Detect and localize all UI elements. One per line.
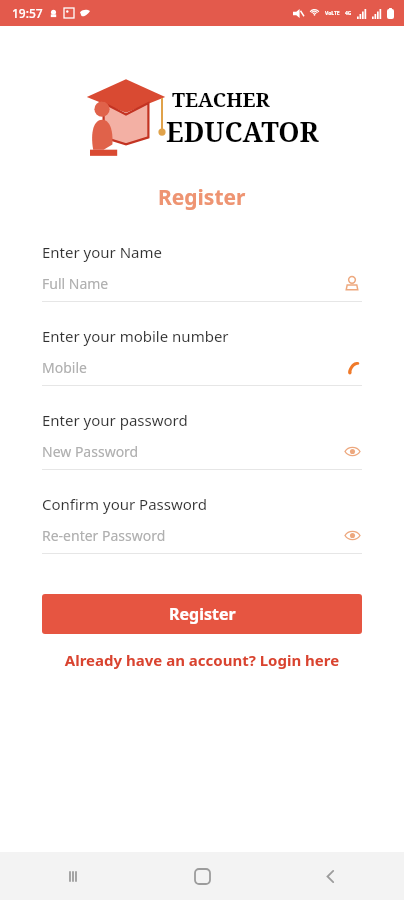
staticText: New Password (42, 442, 342, 461)
staticText: 4G (345, 10, 352, 17)
staticText: TEACHER (172, 86, 270, 113)
button[interactable]: Confirm your Password (42, 494, 362, 578)
staticText: Enter your mobile number (42, 326, 229, 346)
other: Confirm field (342, 525, 362, 545)
staticText: Mobile (42, 358, 342, 377)
button[interactable]: Enter your mobile number (42, 326, 362, 410)
staticText: Register (169, 603, 236, 625)
other: Password field (342, 441, 362, 461)
staticText: Full Name (42, 274, 342, 293)
button[interactable]: Home (180, 854, 224, 898)
button[interactable]: Enter your Name (42, 242, 362, 326)
other: Name field (342, 273, 362, 293)
staticText: Register (158, 183, 246, 212)
staticText: EDUCATOR (166, 113, 319, 150)
button[interactable]: Enter your password (42, 410, 362, 494)
staticText: Enter your Name (42, 242, 162, 262)
staticText: 19:57 (12, 5, 43, 21)
button[interactable]: Already have an account? Login here (50, 648, 354, 672)
staticText: Already have an account? Login here (50, 650, 354, 670)
button[interactable]: Recents (52, 854, 96, 898)
staticText: Re-enter Password (42, 526, 342, 545)
button[interactable]: Back (308, 854, 352, 898)
staticText: Enter your password (42, 410, 188, 430)
other: Mobile field (342, 357, 362, 377)
staticText: Confirm your Password (42, 494, 207, 514)
button[interactable]: Register (42, 594, 362, 634)
staticText: VoLTE (325, 10, 340, 17)
